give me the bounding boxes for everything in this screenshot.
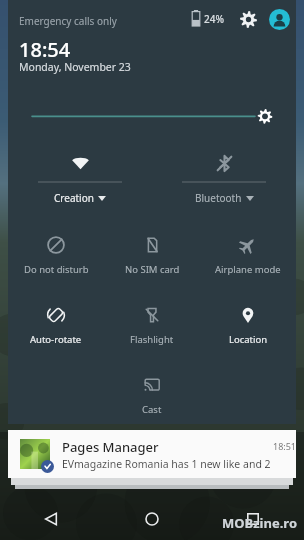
button[interactable]: Brightness — [8, 98, 296, 132]
staticText: Auto-rotate — [30, 333, 82, 346]
staticText: EVmagazine Romania has 1 new like and 2 … — [62, 457, 292, 471]
button[interactable]: Airplane mode — [200, 234, 296, 280]
staticText: Airplane mode — [215, 263, 281, 276]
button[interactable]: Creation — [8, 150, 152, 212]
button[interactable]: Location — [200, 304, 296, 350]
button[interactable]: Recent apps — [231, 498, 275, 540]
button[interactable]: Settings — [237, 8, 259, 30]
staticText: No SIM card — [125, 263, 180, 276]
button[interactable]: Do not disturb — [8, 234, 104, 280]
button[interactable]: No SIM card — [104, 234, 200, 280]
staticText: Flashlight — [130, 333, 174, 346]
staticText: Creation — [54, 191, 94, 205]
staticText: Bluetooth — [195, 191, 242, 205]
button[interactable]: User profile — [267, 7, 291, 31]
button[interactable]: Flashlight — [104, 304, 200, 350]
staticText: 24% — [204, 12, 224, 26]
staticText: Pages Manager — [62, 438, 159, 456]
button[interactable]: Pages Manager — [8, 430, 296, 478]
button[interactable]: Home — [130, 498, 174, 540]
staticText: Emergency calls only — [19, 14, 117, 28]
staticText: Do not disturb — [24, 263, 89, 276]
button[interactable]: Bluetooth — [152, 150, 296, 212]
button[interactable]: Back — [29, 498, 73, 540]
staticText: Monday, November 23 — [19, 60, 131, 74]
button[interactable]: Cast — [104, 374, 200, 420]
staticText: 18:51 — [273, 440, 297, 452]
staticText: Cast — [142, 403, 162, 416]
staticText: Location — [229, 333, 268, 346]
staticText: MOBzine.ro — [222, 514, 298, 532]
staticText: 18:54 — [19, 36, 71, 63]
button[interactable]: Auto-rotate — [8, 304, 104, 350]
